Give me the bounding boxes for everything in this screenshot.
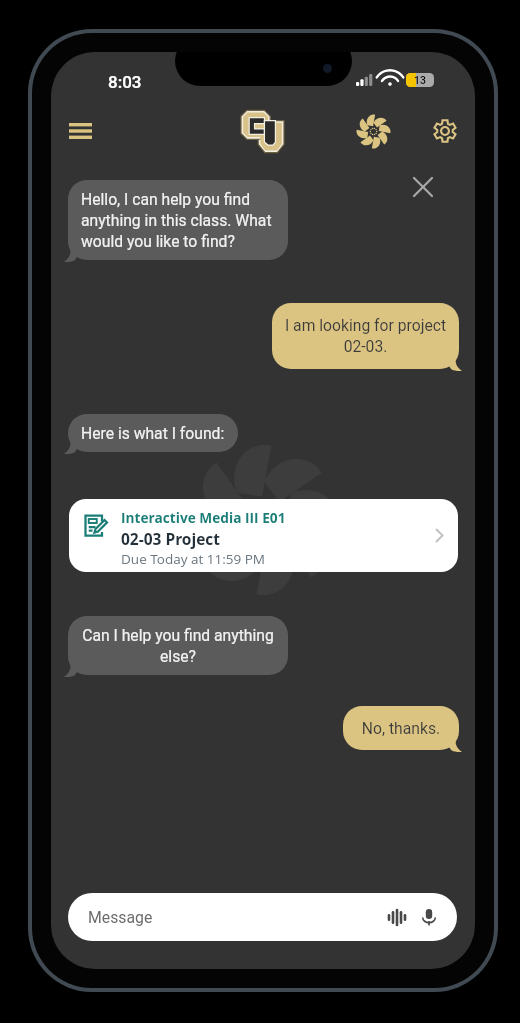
button[interactable]: Can I help you find anything else? [68,616,288,675]
staticText: 02-03 Project [121,528,221,549]
staticText: Can I help you find anything else? [81,626,275,665]
staticText: No, thanks. [359,719,443,737]
staticText: Hello, I can help you find anything in t… [81,190,275,250]
staticText: 13 [414,74,426,86]
button[interactable]: CU Home [238,107,286,155]
staticText: Here is what I found: [81,424,225,442]
button[interactable]: Settings [425,111,465,151]
button[interactable]: Apps [353,111,393,151]
button[interactable]: Interactive Media III E01 [69,499,458,572]
button[interactable]: Voice input [419,907,439,927]
staticText: Due Today at 11:59 PM [121,550,266,568]
button[interactable]: Here is what I found: [68,414,238,452]
button[interactable]: Menu [60,111,100,151]
staticText: 8:03 [108,72,142,92]
button[interactable]: I am looking for project 02-03. [272,303,459,369]
staticText: Interactive Media III E01 [121,508,286,527]
staticText: Message [88,908,153,927]
staticText: I am looking for project 02-03. [283,316,448,356]
button[interactable]: Close [404,168,442,206]
button[interactable]: Hello, I can help you find anything in t… [68,180,288,260]
button[interactable]: Message [68,893,457,941]
button[interactable]: No, thanks. [343,706,459,750]
